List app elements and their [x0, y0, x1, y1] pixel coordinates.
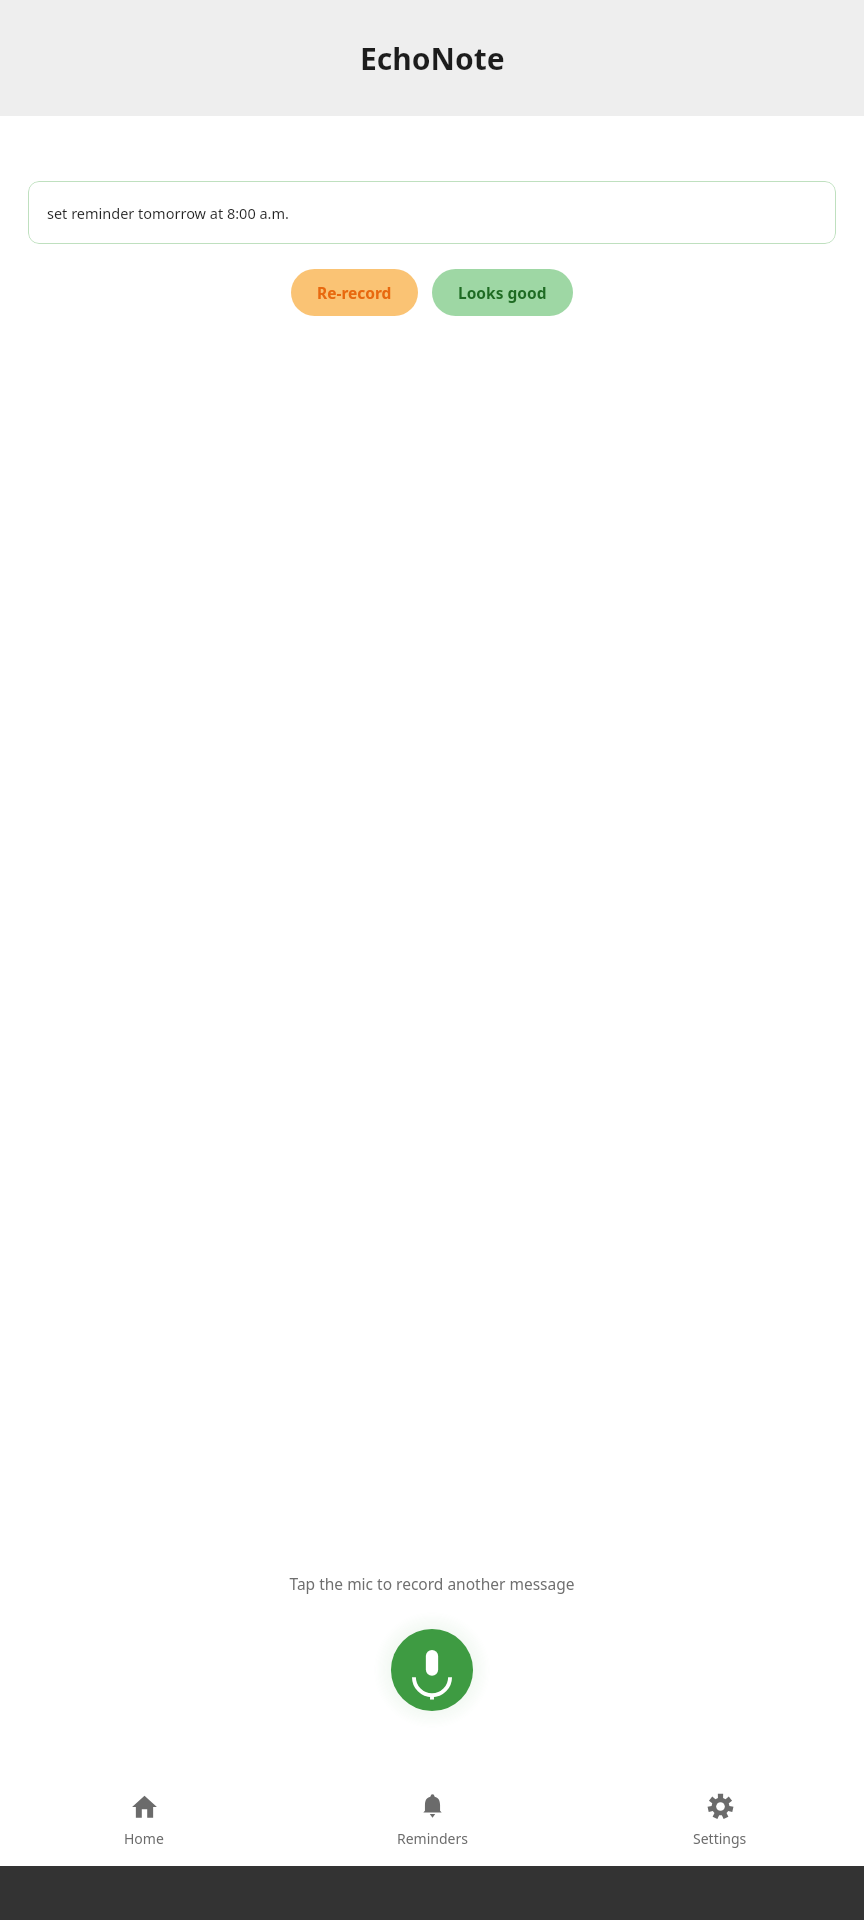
button[interactable]: Re-record	[291, 269, 418, 316]
staticText: EchoNote	[360, 38, 505, 79]
button[interactable]: Settings	[576, 1774, 864, 1866]
staticText: Reminders	[397, 1829, 468, 1848]
staticText: set reminder tomorrow at 8:00 a.m.	[47, 203, 289, 223]
button[interactable]: Looks good	[432, 269, 573, 316]
staticText: Home	[124, 1829, 164, 1848]
staticText: Settings	[693, 1829, 747, 1848]
staticText: Looks good	[458, 282, 547, 303]
button[interactable]: Home	[0, 1774, 288, 1866]
button[interactable]: set reminder tomorrow at 8:00 a.m.	[28, 181, 836, 244]
button[interactable]: Record voice message	[378, 1616, 486, 1724]
staticText: Re-record	[317, 282, 392, 303]
button[interactable]: Reminders	[288, 1774, 576, 1866]
staticText: Tap the mic to record another message	[0, 1573, 864, 1594]
